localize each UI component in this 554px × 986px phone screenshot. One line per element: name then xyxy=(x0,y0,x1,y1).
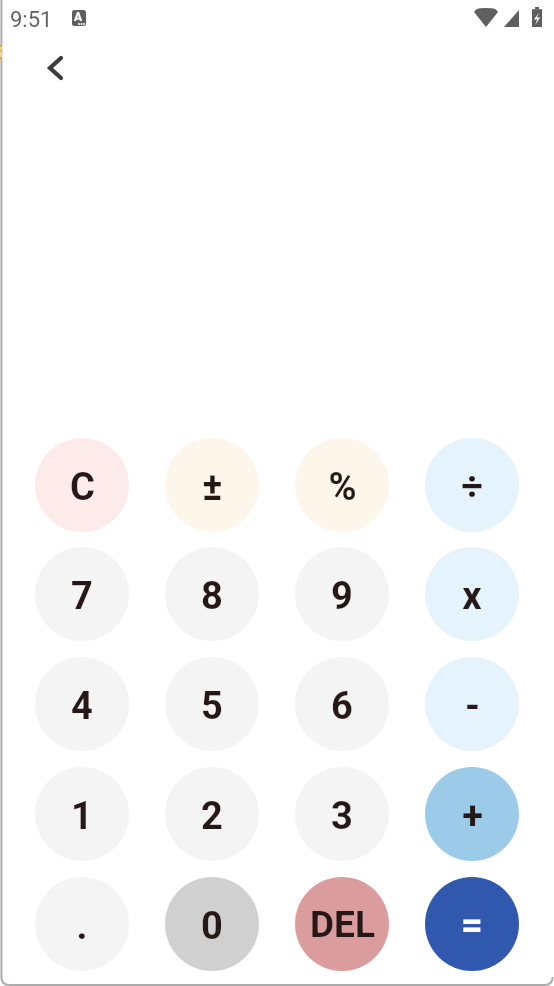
staticText: ÷ xyxy=(461,465,483,510)
staticText: C xyxy=(70,465,95,510)
button[interactable]: 3 xyxy=(295,767,389,861)
staticText: 9:51 xyxy=(10,7,53,33)
staticText: 1 xyxy=(71,794,93,839)
button[interactable]: 6 xyxy=(295,657,389,751)
staticText: 6 xyxy=(331,684,353,729)
staticText: 8 xyxy=(201,574,223,619)
button[interactable]: - xyxy=(425,657,519,751)
staticText: 4 xyxy=(71,684,93,729)
staticText: A xyxy=(74,10,83,24)
staticText: + xyxy=(462,794,483,839)
button[interactable]: % xyxy=(295,438,389,532)
staticText: 5 xyxy=(201,684,223,729)
button[interactable]: 4 xyxy=(35,657,129,751)
button[interactable]: + xyxy=(425,767,519,861)
staticText: 7 xyxy=(71,574,93,619)
staticText: 9 xyxy=(331,574,353,619)
staticText: % xyxy=(328,465,357,510)
button[interactable]: = xyxy=(425,877,519,971)
button[interactable]: DEL xyxy=(295,877,389,971)
button[interactable]: . xyxy=(35,877,129,971)
staticText: 0 xyxy=(201,904,223,949)
staticText: 3 xyxy=(331,794,353,839)
button[interactable]: x xyxy=(425,547,519,641)
button[interactable]: 9 xyxy=(295,547,389,641)
button[interactable]: ÷ xyxy=(425,438,519,532)
button[interactable]: ± xyxy=(165,438,259,532)
button[interactable]: 0 xyxy=(165,877,259,971)
staticText: = xyxy=(461,903,483,948)
button[interactable]: 7 xyxy=(35,547,129,641)
button[interactable]: 2 xyxy=(165,767,259,861)
staticText: 2 xyxy=(201,794,223,839)
staticText: DEL xyxy=(310,903,375,946)
button[interactable]: Back xyxy=(31,44,79,92)
staticText: - xyxy=(465,684,480,729)
staticText: ± xyxy=(202,465,223,510)
staticText: . xyxy=(76,904,88,949)
button[interactable]: 1 xyxy=(35,767,129,861)
button[interactable]: C xyxy=(35,438,129,532)
staticText: x xyxy=(462,574,482,619)
button[interactable]: 5 xyxy=(165,657,259,751)
button[interactable]: 8 xyxy=(165,547,259,641)
